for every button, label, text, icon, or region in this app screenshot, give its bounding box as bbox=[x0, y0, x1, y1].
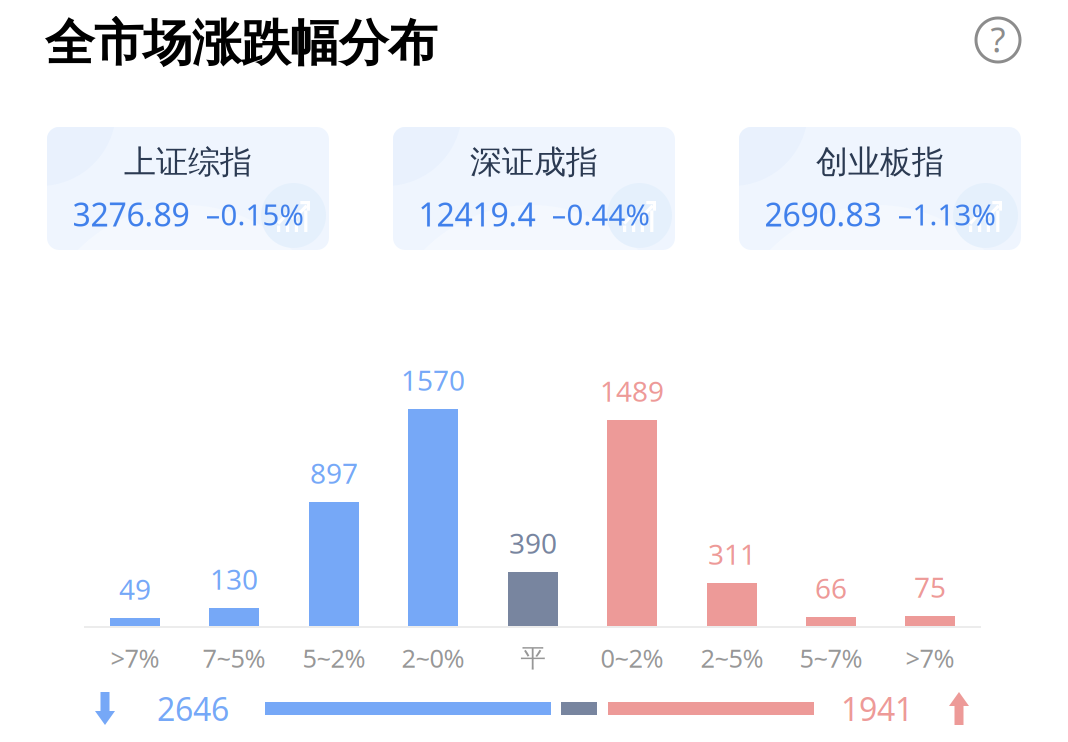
staticText: 1489 bbox=[600, 372, 664, 410]
staticText: 深证成指 bbox=[470, 142, 598, 182]
staticText: 390 bbox=[509, 524, 557, 562]
staticText: 创业板指 bbox=[816, 142, 944, 182]
staticText: –0.15% bbox=[205, 194, 303, 233]
staticText: 2~0% bbox=[401, 641, 464, 675]
staticText: 5~7% bbox=[799, 641, 862, 675]
staticText: 2~5% bbox=[700, 641, 763, 675]
staticText: 5~2% bbox=[302, 641, 365, 675]
staticText: –0.44% bbox=[551, 194, 649, 233]
staticText: >7% bbox=[905, 641, 954, 675]
staticText: 1941 bbox=[841, 687, 913, 730]
staticText: 1570 bbox=[401, 361, 465, 399]
staticText: 12419.4 bbox=[418, 193, 535, 235]
button[interactable]: Help bbox=[974, 16, 1022, 64]
staticText: 7~5% bbox=[202, 641, 265, 675]
staticText: 75 bbox=[914, 568, 946, 606]
staticText: ? bbox=[990, 16, 1005, 62]
staticText: 上证综指 bbox=[124, 142, 252, 182]
staticText: 2690.83 bbox=[764, 193, 881, 235]
staticText: 2646 bbox=[157, 687, 229, 730]
staticText: 66 bbox=[815, 569, 847, 607]
button[interactable]: 深证成指 bbox=[393, 127, 675, 250]
button[interactable]: 创业板指 bbox=[739, 127, 1021, 250]
staticText: 49 bbox=[119, 570, 151, 608]
staticText: 130 bbox=[210, 560, 258, 598]
staticText: 3276.89 bbox=[72, 193, 189, 235]
staticText: 897 bbox=[310, 454, 358, 492]
staticText: 平 bbox=[520, 642, 545, 673]
staticText: –1.13% bbox=[897, 194, 995, 233]
staticText: 0~2% bbox=[600, 641, 663, 675]
staticText: >7% bbox=[110, 641, 159, 675]
button[interactable]: 上证综指 bbox=[47, 127, 329, 250]
staticText: 全市场涨跌幅分布 bbox=[45, 13, 437, 74]
staticText: 311 bbox=[708, 535, 756, 573]
